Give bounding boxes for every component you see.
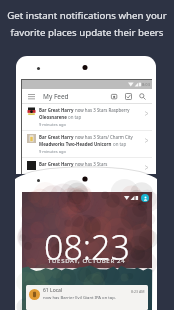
- button[interactable]: Bar Great Harry: [22, 131, 152, 157]
- staticText: on tap: [68, 114, 82, 120]
- staticText: 8:03: [142, 82, 150, 87]
- button[interactable]: Edit: [121, 89, 135, 103]
- staticText: Bar Great Harry: [39, 107, 74, 113]
- staticText: 9 minutes ago: [39, 122, 66, 127]
- staticText: Get instant notifications when your: [7, 9, 167, 22]
- staticText: Bar Great Harry: [39, 161, 74, 167]
- staticText: Bar Great Harry: [39, 134, 74, 140]
- staticText: 9 minutes ago: [39, 149, 66, 154]
- staticText: favorite places update their beers: [10, 26, 164, 39]
- staticText: on tap: [113, 141, 127, 147]
- button[interactable]: 61 Local: [26, 285, 148, 310]
- staticText: Oleosnarene: [39, 114, 67, 120]
- staticText: 08:23: [44, 224, 130, 270]
- staticText: now has 3 Stars/ Charm City: [75, 134, 133, 140]
- button[interactable]: Bar Great Harry: [22, 158, 152, 174]
- staticText: My Feed: [43, 92, 69, 101]
- button[interactable]: Search: [135, 89, 149, 103]
- staticText: 8:23 AM: [131, 289, 145, 294]
- staticText: Meadworks Two-Headed Unicorn: [39, 141, 112, 147]
- staticText: now has Barrier Evil Giant IPA on tap.: [43, 295, 116, 301]
- button[interactable]: Menu: [26, 91, 37, 102]
- staticText: 61 Local: [43, 287, 63, 294]
- staticText: now has 3 Stars Raspberry: [75, 107, 130, 113]
- button[interactable]: Bar Great Harry: [22, 104, 152, 130]
- staticText: TUESDAY, OCTOBER 24: [48, 257, 126, 265]
- staticText: now has 3 Stars: [75, 161, 108, 167]
- button[interactable]: Notifications: [107, 89, 121, 103]
